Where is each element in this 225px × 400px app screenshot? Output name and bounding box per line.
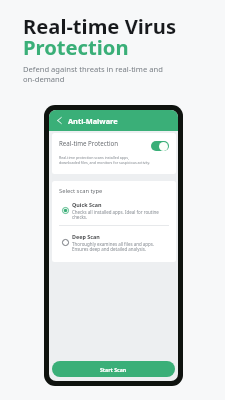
staticText: Thoroughly examines all files and apps. … xyxy=(72,241,155,253)
staticText: Select scan type xyxy=(59,187,103,195)
button[interactable]: Back xyxy=(54,115,65,126)
staticText: Checks all installed apps. Ideal for rou… xyxy=(72,209,159,221)
staticText: Anti-Malware xyxy=(68,116,118,126)
staticText: Real-time Protection xyxy=(59,139,119,147)
button[interactable]: Real-time Protection xyxy=(59,138,169,148)
staticText: Deep Scan xyxy=(72,233,100,240)
staticText: Start Scan xyxy=(100,366,127,373)
staticText: Real-time Virus Protection xyxy=(23,12,177,61)
button[interactable]: Deep Scan xyxy=(59,233,169,253)
staticText: Real-time protection scans installed app… xyxy=(59,155,151,165)
button[interactable]: Start Scan xyxy=(52,361,175,377)
button[interactable]: Quick Scan xyxy=(59,201,169,221)
staticText: Quick Scan xyxy=(72,201,102,208)
staticText: Defend against threats in real-time and … xyxy=(23,64,163,85)
